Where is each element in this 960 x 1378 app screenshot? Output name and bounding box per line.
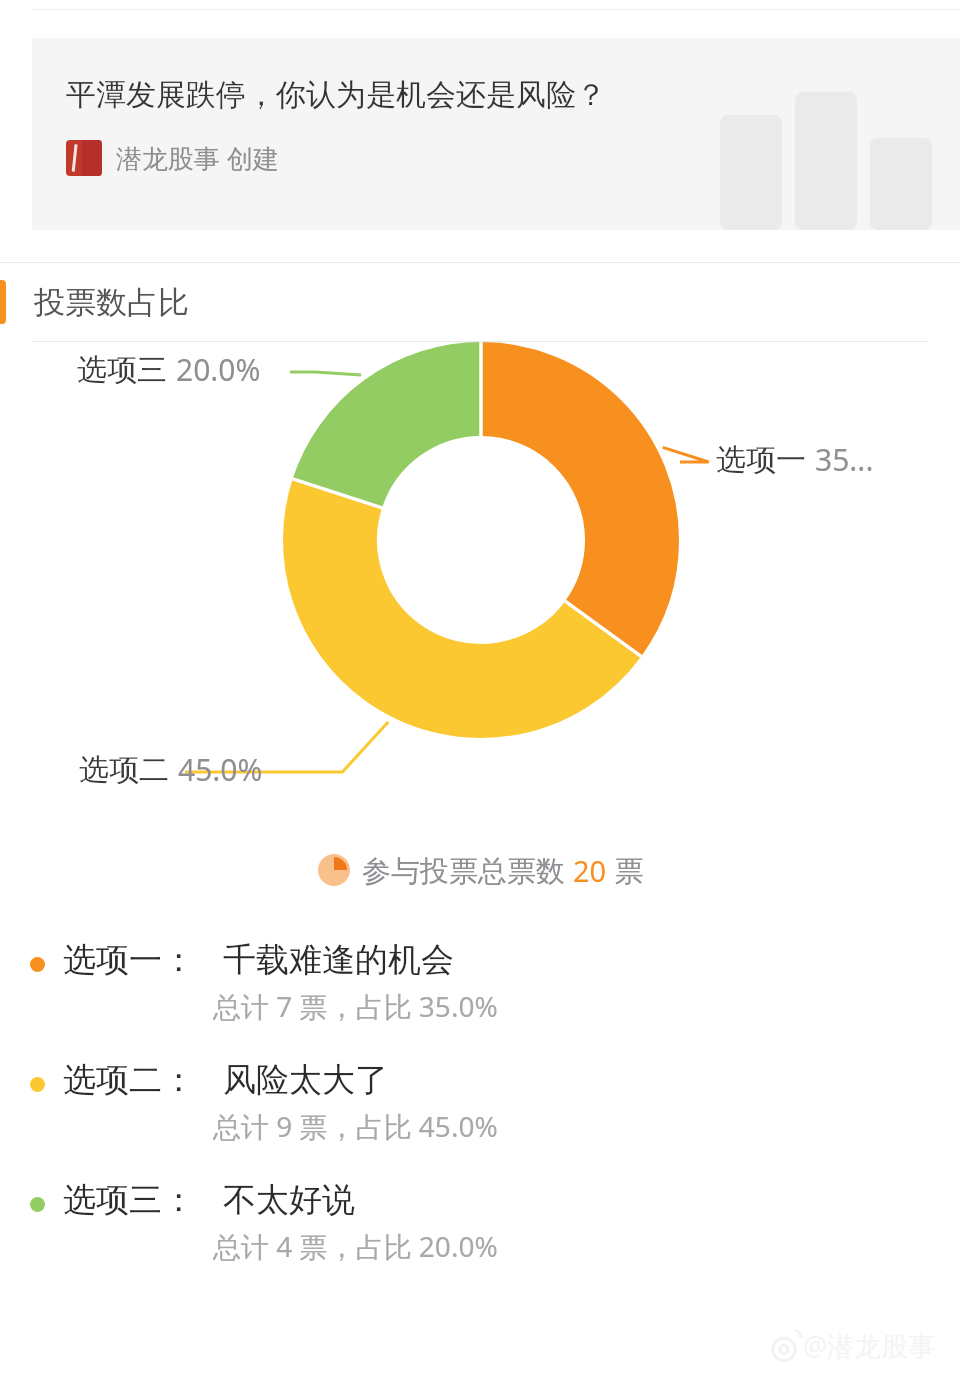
button[interactable]: 选项三： [0, 1167, 960, 1287]
staticText: 总计 9 票，占比 45.0% [213, 1107, 498, 1145]
staticText: 20.0% [176, 349, 261, 390]
staticText: 选项三 [77, 351, 167, 389]
staticText: 总计 4 票，占比 20.0% [213, 1227, 498, 1265]
staticText: 风险太大了 [223, 1059, 388, 1101]
staticText: 投票数占比 [34, 283, 189, 322]
staticText: 票 [607, 850, 644, 890]
staticText: 潜龙股事 创建 [116, 140, 279, 176]
staticText: 不太好说 [223, 1179, 355, 1221]
button[interactable]: 选项二： [0, 1047, 960, 1167]
staticText: 35... [815, 439, 874, 480]
button[interactable]: 投票数占比 [0, 263, 960, 341]
staticText: 总计 7 票，占比 35.0% [213, 987, 498, 1025]
button[interactable]: Pie [316, 850, 644, 890]
staticText: 选项二 [79, 751, 169, 789]
staticText: 参与投票总票数 [362, 850, 573, 890]
staticText: 45.0% [178, 749, 263, 790]
other: Avatar [66, 140, 102, 176]
staticText: 平潭发展跌停，你认为是机会还是风险？ [66, 76, 606, 114]
staticText: 选项一 [716, 441, 806, 479]
staticText: @潜龙股事 [803, 1327, 936, 1364]
other: Pie [316, 852, 352, 888]
staticText: 20 [573, 851, 607, 890]
staticText: 选项一： [63, 939, 195, 981]
button[interactable]: 平潭发展跌停，你认为是机会还是风险？ [32, 38, 960, 230]
staticText: 选项三： [63, 1179, 195, 1221]
staticText: 千载难逢的机会 [223, 939, 454, 981]
staticText: 选项二： [63, 1059, 195, 1101]
button[interactable]: 选项一： [0, 927, 960, 1047]
